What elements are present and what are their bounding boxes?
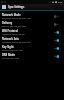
staticText: Sync Settings [8, 5, 25, 9]
button[interactable]: Network Sets [0, 36, 64, 44]
button[interactable]: Network Mode [0, 12, 64, 20]
button[interactable]: Toggle Network Mode [53, 13, 60, 20]
staticText: Send to this address now [2, 25, 26, 28]
button[interactable]: Key Sight [0, 44, 64, 52]
staticText: Condition Should be done fine [2, 41, 31, 44]
button[interactable]: Toggle Delivery [53, 21, 60, 28]
staticText: Delivery [2, 21, 13, 24]
staticText: Network Mode [2, 13, 21, 16]
staticText: Key Sight [2, 45, 14, 48]
button[interactable]: Delivery [0, 20, 64, 28]
button[interactable]: Toggle DNS Mode [53, 53, 60, 60]
staticText: Sub title liner here [2, 57, 20, 60]
staticText: Network Sets [2, 37, 19, 40]
staticText: Condition Should be set [2, 33, 25, 36]
button[interactable]: Toggle Wifi Protocol [53, 29, 60, 36]
button[interactable]: Toggle Network Sets [53, 37, 60, 44]
staticText: DNS Mode [2, 53, 15, 56]
button[interactable]: App icon [2, 5, 6, 9]
button[interactable]: Toggle Key Sight [53, 45, 60, 52]
staticText: Sub title line here now [2, 49, 23, 52]
button[interactable]: Wifi Protocol [0, 28, 64, 36]
staticText: Wifi Protocol [2, 29, 18, 32]
staticText: 4:12 [58, 1, 63, 4]
button[interactable]: DNS Mode [0, 52, 64, 60]
staticText: Condition Should be done now [2, 17, 31, 20]
